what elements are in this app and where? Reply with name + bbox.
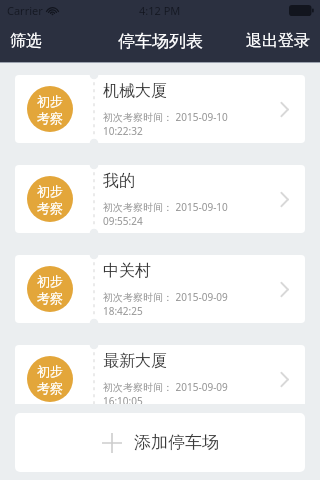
button[interactable]: 初步 [15, 255, 305, 323]
staticText: 初次考察时间： 2015-09-10 09:55:24 [103, 200, 265, 228]
staticText: 筛选 [10, 31, 42, 51]
other: Open details [273, 278, 295, 300]
staticText: 初次考察时间： 2015-09-09 16:10:05 [103, 380, 265, 408]
button[interactable]: 添加停车场 [15, 413, 305, 472]
staticText: 中关村 [103, 261, 151, 281]
staticText: 添加停车场 [134, 432, 219, 453]
button[interactable]: 退出登录 [236, 23, 320, 59]
other: Open details [273, 98, 295, 120]
staticText: 4:12 PM [139, 3, 181, 18]
button[interactable]: 初步 [15, 165, 305, 233]
staticText: 我的 [103, 171, 135, 191]
staticText: 停车场列表 [118, 31, 203, 52]
staticText: 初步 [37, 273, 63, 289]
staticText: 考察 [37, 110, 63, 126]
staticText: 考察 [37, 290, 63, 306]
other: Open details [273, 188, 295, 210]
staticText: 考察 [37, 380, 63, 396]
staticText: 考察 [37, 200, 63, 216]
staticText: Carrier [7, 3, 43, 18]
button[interactable]: 筛选 [0, 23, 52, 59]
staticText: 初次考察时间： 2015-09-09 18:42:25 [103, 290, 265, 318]
button[interactable]: 初步 [15, 75, 305, 143]
staticText: 初步 [37, 363, 63, 379]
other: Open details [273, 368, 295, 390]
staticText: 机械大厦 [103, 81, 167, 101]
button[interactable]: 初步 [15, 345, 305, 413]
staticText: 初步 [37, 183, 63, 199]
staticText: 最新大厦 [103, 351, 167, 371]
staticText: 初次考察时间： 2015-09-10 10:22:32 [103, 110, 265, 138]
staticText: 初步 [37, 93, 63, 109]
staticText: 退出登录 [246, 31, 310, 51]
button[interactable]: 停车场列表 [108, 23, 213, 60]
